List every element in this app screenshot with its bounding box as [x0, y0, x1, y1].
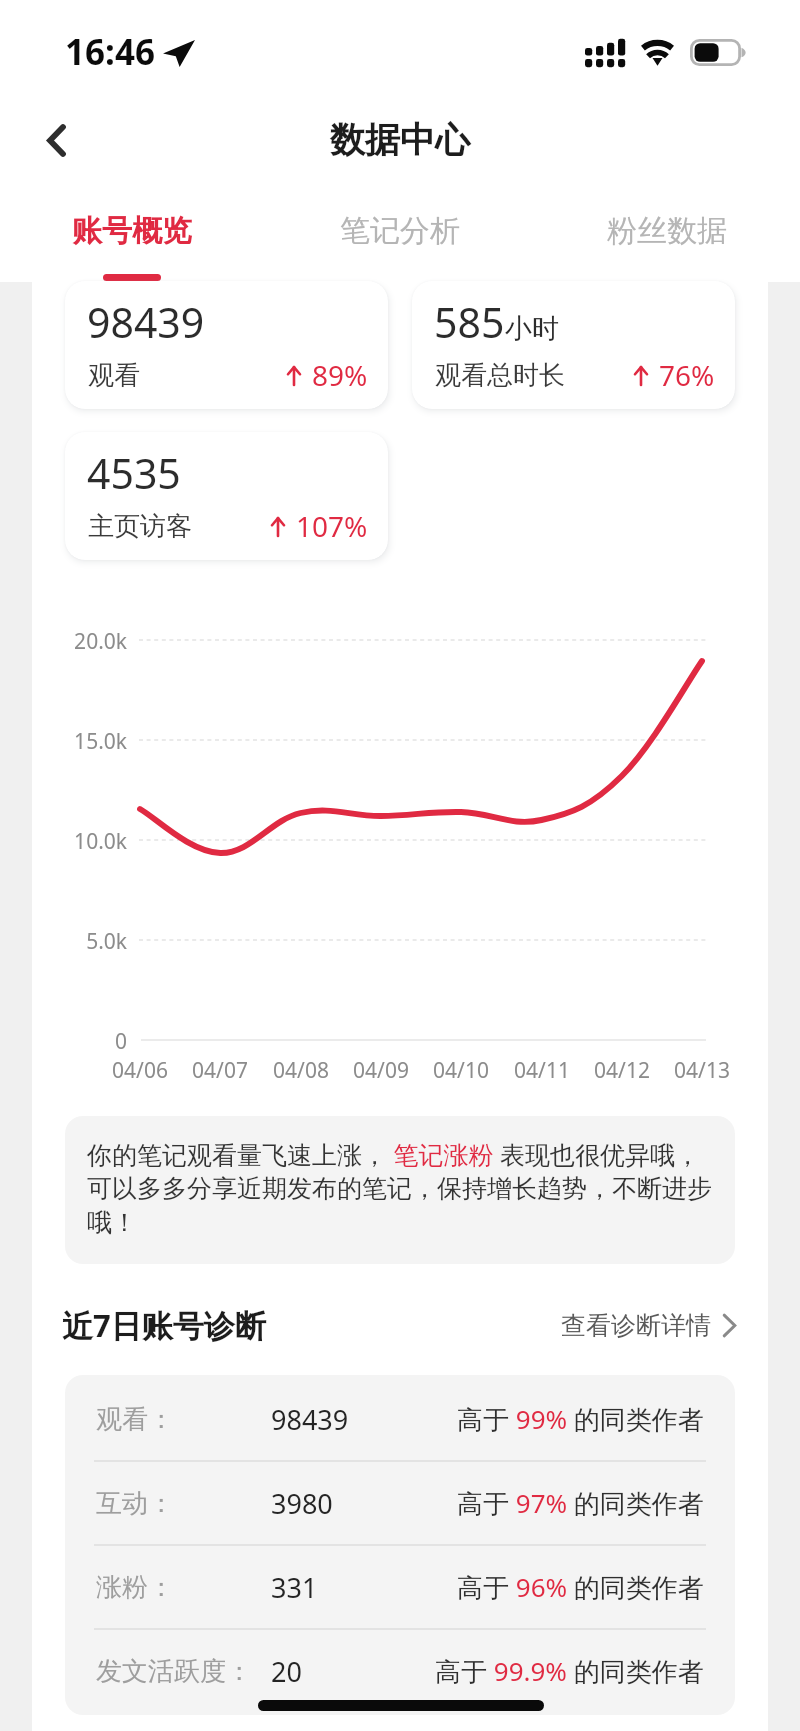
- button[interactable]: 4535: [65, 432, 388, 560]
- staticText: 89%: [312, 356, 368, 394]
- staticText: 高于 96% 的同类作者: [457, 1569, 704, 1605]
- staticText: 10.0k: [22, 827, 127, 856]
- staticText: 04/10: [411, 1056, 511, 1085]
- staticText: 观看：: [96, 1403, 174, 1436]
- staticText: 04/08: [251, 1056, 351, 1085]
- staticText: 98439: [87, 294, 205, 350]
- staticText: 76%: [659, 356, 715, 394]
- staticText: 发文活跃度：: [96, 1655, 252, 1688]
- staticText: 查看诊断详情: [561, 1310, 711, 1341]
- staticText: 5.0k: [22, 927, 127, 956]
- staticText: 585: [434, 294, 505, 350]
- button[interactable]: 账号概览: [20, 178, 244, 282]
- staticText: 账号概览: [72, 212, 192, 250]
- staticText: 107%: [296, 507, 368, 545]
- staticText: 高于 99.9% 的同类作者: [435, 1653, 704, 1689]
- staticText: 20: [271, 1653, 302, 1690]
- staticText: 涨粉：: [96, 1571, 174, 1604]
- button[interactable]: 98439: [65, 281, 388, 409]
- staticText: 4535: [87, 445, 181, 501]
- staticText: 粉丝数据: [607, 212, 727, 250]
- staticText: 近7日账号诊断: [62, 1304, 266, 1346]
- staticText: 04/12: [572, 1056, 672, 1085]
- staticText: 数据中心: [330, 118, 470, 162]
- staticText: 15.0k: [22, 727, 127, 756]
- staticText: 小时: [505, 312, 559, 346]
- staticText: 观看总时长: [435, 359, 565, 392]
- staticText: 0: [22, 1027, 127, 1056]
- staticText: 04/13: [652, 1056, 752, 1085]
- staticText: 04/11: [492, 1056, 592, 1085]
- staticText: 16:46: [65, 28, 155, 76]
- staticText: 笔记分析: [340, 212, 460, 250]
- staticText: 04/09: [331, 1056, 431, 1085]
- staticText: 主页访客: [88, 510, 192, 543]
- button[interactable]: 发文活跃度：: [65, 1629, 735, 1713]
- staticText: 04/06: [90, 1056, 190, 1085]
- button[interactable]: 观看：: [65, 1377, 735, 1461]
- staticText: 高于 97% 的同类作者: [457, 1485, 704, 1521]
- button[interactable]: 查看诊断详情: [561, 1310, 737, 1341]
- button[interactable]: 粉丝数据: [555, 178, 779, 282]
- button[interactable]: 585: [412, 281, 735, 409]
- staticText: 331: [271, 1569, 318, 1606]
- staticText: 你的笔记观看量飞速上涨， 笔记涨粉 表现也很优异哦， 可以多多分享近期发布的笔记…: [87, 1137, 712, 1238]
- button[interactable]: 互动：: [65, 1461, 735, 1545]
- staticText: 20.0k: [22, 627, 127, 656]
- staticText: 98439: [271, 1401, 349, 1438]
- staticText: 互动：: [96, 1487, 174, 1520]
- staticText: 3980: [271, 1485, 333, 1522]
- button[interactable]: 笔记分析: [288, 178, 512, 282]
- button[interactable]: 涨粉：: [65, 1545, 735, 1629]
- staticText: 高于 99% 的同类作者: [457, 1401, 704, 1437]
- staticText: 04/07: [170, 1056, 270, 1085]
- button[interactable]: Back: [22, 106, 90, 174]
- staticText: 观看: [88, 359, 140, 392]
